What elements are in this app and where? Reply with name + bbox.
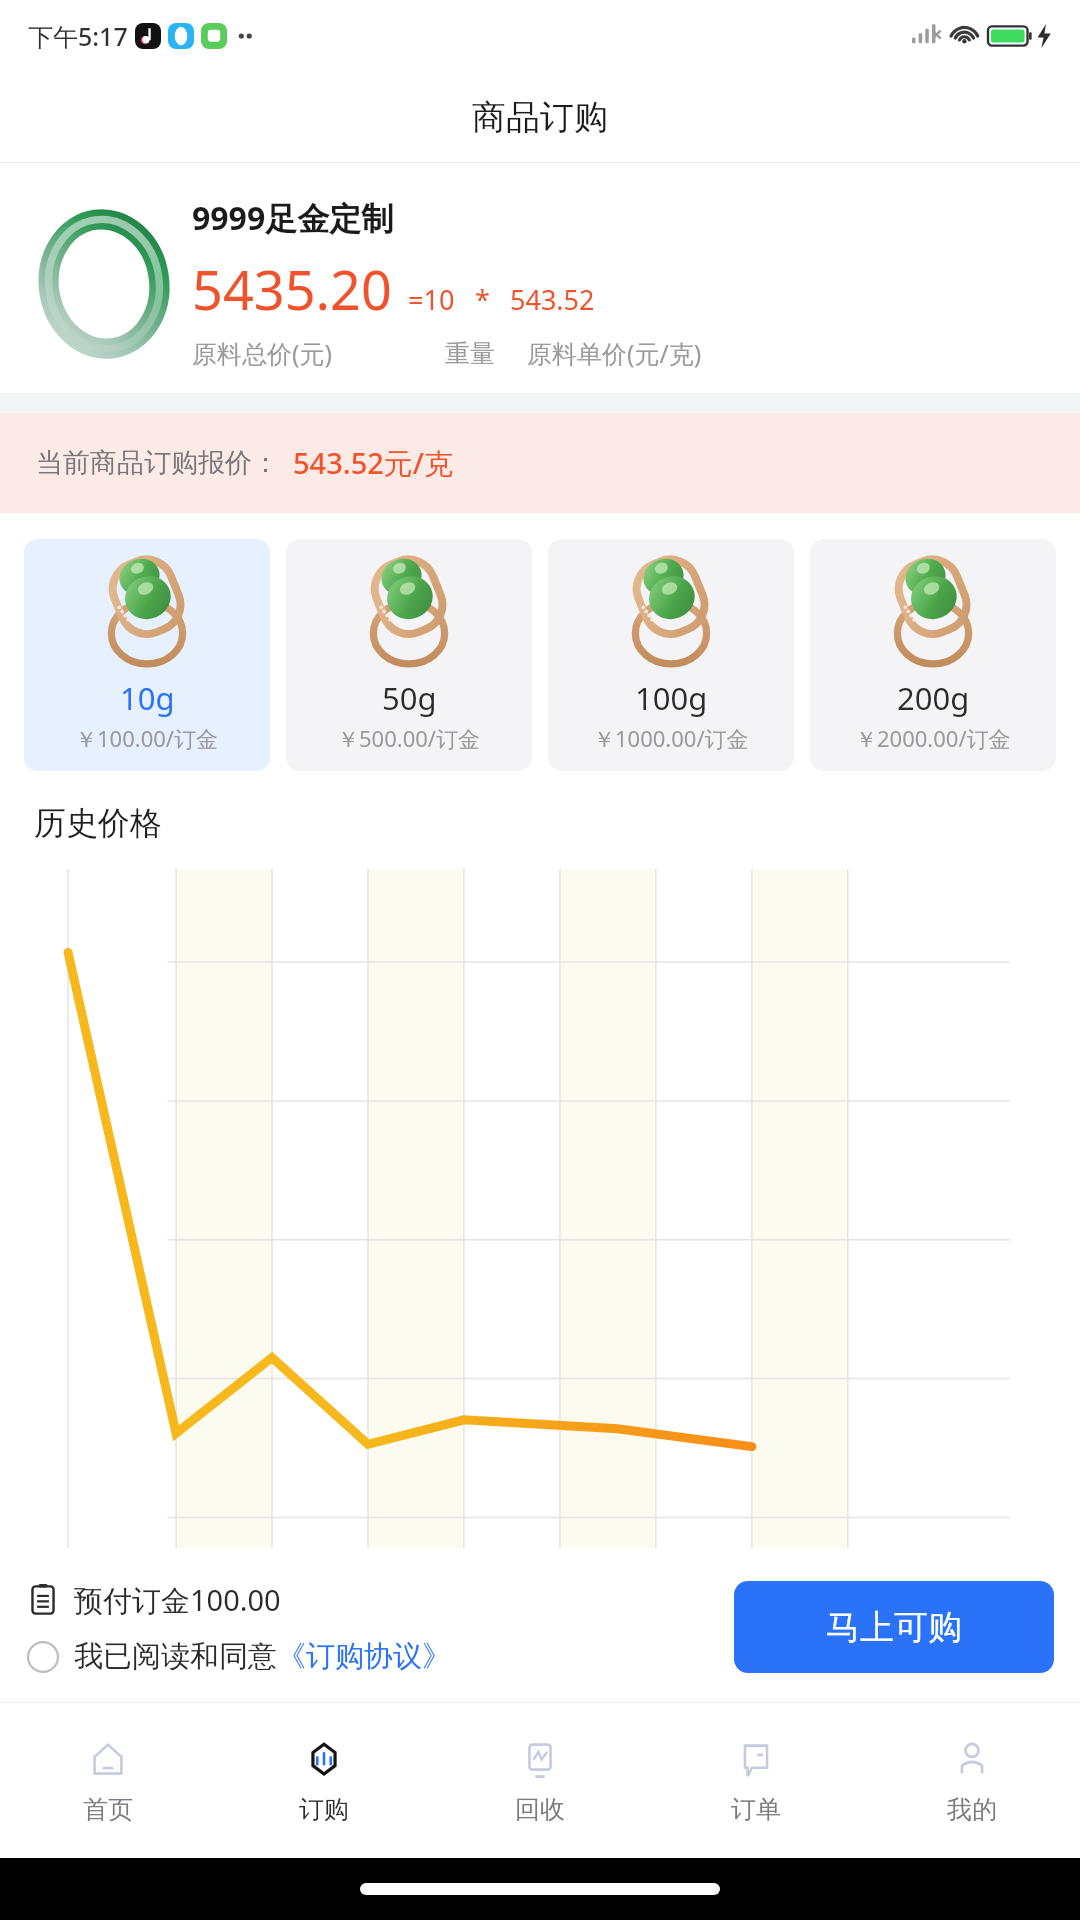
staticText: ￥500.00/订金 — [337, 723, 481, 753]
staticText: 原料单价(元/克) — [527, 336, 702, 370]
staticText: 原料总价(元) — [192, 336, 333, 370]
staticText: 订单 — [731, 1794, 781, 1825]
button[interactable]: 《订购协议》 — [277, 1638, 451, 1675]
staticText: 10g — [120, 677, 175, 719]
staticText: 当前商品订购报价： — [36, 446, 279, 480]
button[interactable]: 首页 — [0, 1703, 216, 1858]
staticText: 预付订金100.00 — [74, 1580, 281, 1620]
staticText: 重量 — [445, 338, 495, 369]
staticText: 我已阅读和同意 — [74, 1638, 277, 1675]
staticText: 200g — [897, 677, 970, 719]
button[interactable]: 马上可购 — [734, 1581, 1054, 1673]
staticText: =10 — [408, 281, 455, 318]
staticText: 543.52 — [510, 281, 595, 318]
staticText: 订购 — [299, 1794, 349, 1825]
staticText: 历史价格 — [34, 803, 162, 843]
staticText: 5435.20 — [192, 252, 392, 326]
staticText: 我的 — [947, 1794, 997, 1825]
staticText: ￥2000.00/订金 — [855, 723, 1011, 753]
button[interactable]: 订购 — [216, 1703, 432, 1858]
button[interactable]: 回收 — [432, 1703, 648, 1858]
button[interactable]: 我的 — [864, 1703, 1080, 1858]
staticText: * — [475, 281, 490, 318]
staticText: 100g — [635, 677, 708, 719]
staticText: ￥1000.00/订金 — [593, 723, 749, 753]
button[interactable]: 10g — [24, 539, 270, 771]
button[interactable]: 100g — [548, 539, 794, 771]
staticText: ￥100.00/订金 — [75, 723, 219, 753]
staticText: 首页 — [83, 1794, 133, 1825]
staticText: 马上可购 — [826, 1606, 962, 1649]
staticText: 543.52元/克 — [293, 443, 453, 483]
staticText: 50g — [382, 677, 437, 719]
button[interactable]: 50g — [286, 539, 532, 771]
button[interactable]: 订单 — [648, 1703, 864, 1858]
staticText: 商品订购 — [472, 96, 608, 139]
staticText: 下午5:17 — [28, 19, 128, 53]
staticText: 回收 — [515, 1794, 565, 1825]
staticText: 9999足金定制 — [192, 196, 394, 240]
button[interactable]: 我已阅读和同意 — [26, 1638, 451, 1675]
button[interactable]: 200g — [810, 539, 1056, 771]
